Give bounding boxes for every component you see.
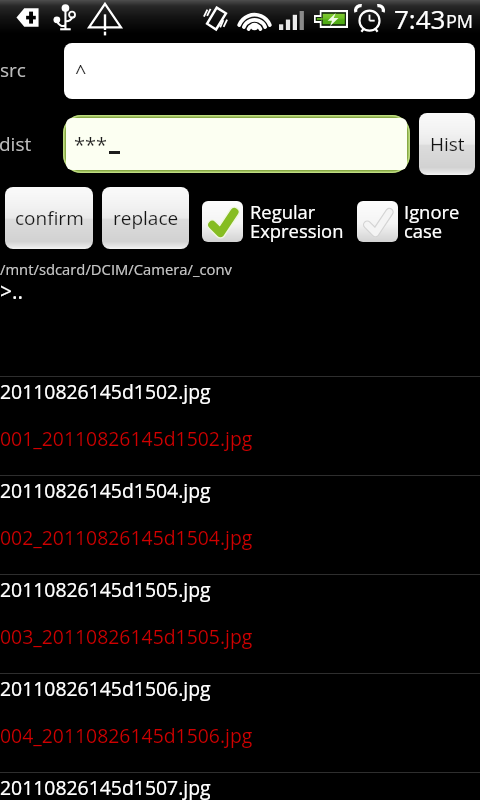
button[interactable]: confirm [5, 187, 93, 249]
staticText: ^ [75, 58, 87, 85]
staticText: 20110826145d1507.jpg [0, 774, 211, 800]
staticText: /mnt/sdcard/DCIM/Camera/_conv [0, 259, 232, 279]
staticText: 20110826145d1502.jpg [0, 378, 211, 404]
button[interactable]: replace [102, 187, 189, 249]
button[interactable]: >.. [0, 280, 480, 376]
staticText: >.. [0, 277, 24, 306]
button[interactable]: Ignore case [357, 199, 460, 244]
staticText: 002_20110826145d1504.jpg [0, 524, 253, 550]
staticText: Ignore case [404, 199, 460, 244]
button[interactable]: *** [66, 118, 407, 170]
staticText: PM [446, 9, 474, 34]
staticText: src [0, 57, 26, 83]
button[interactable]: Hist [419, 113, 475, 175]
button[interactable]: Regular Expression [202, 199, 344, 244]
staticText: dist [0, 131, 32, 157]
button[interactable]: 20110826145d1504.jpg [0, 476, 480, 574]
staticText: 004_20110826145d1506.jpg [0, 722, 253, 748]
staticText: Regular Expression [250, 199, 344, 244]
staticText: 20110826145d1505.jpg [0, 576, 211, 602]
staticText: Hist [430, 131, 465, 157]
button[interactable]: ^ [64, 43, 475, 99]
staticText: replace [113, 205, 179, 231]
staticText: 7:43 [394, 1, 446, 34]
staticText: 20110826145d1504.jpg [0, 477, 211, 503]
button[interactable]: 20110826145d1505.jpg [0, 575, 480, 673]
button[interactable]: 20110826145d1507.jpg [0, 773, 480, 800]
button[interactable]: 20110826145d1506.jpg [0, 674, 480, 772]
staticText: 20110826145d1506.jpg [0, 675, 211, 701]
staticText: 001_20110826145d1502.jpg [0, 425, 253, 451]
staticText: *** [74, 131, 108, 158]
staticText: confirm [15, 205, 84, 231]
button[interactable]: 20110826145d1502.jpg [0, 377, 480, 475]
staticText: 003_20110826145d1505.jpg [0, 623, 253, 649]
